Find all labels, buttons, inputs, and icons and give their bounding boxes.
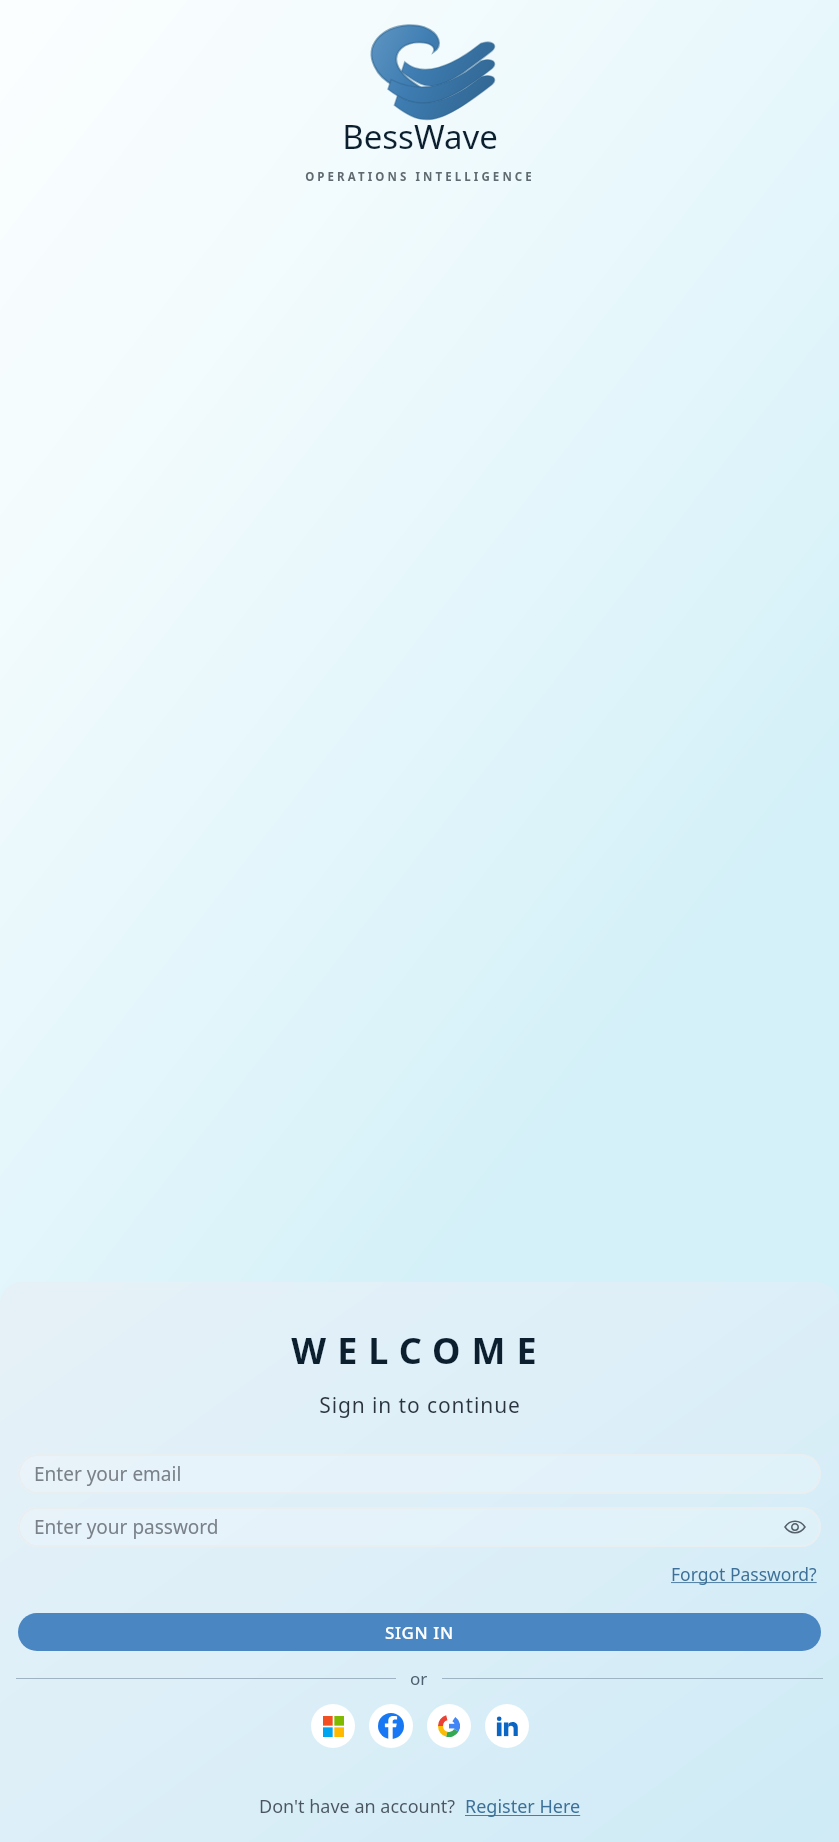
staticText: Enter your password xyxy=(34,1514,219,1540)
button[interactable]: Enter your email xyxy=(18,1454,821,1494)
staticText: or xyxy=(410,1667,428,1690)
staticText: OPERATIONS INTELLIGENCE xyxy=(305,169,535,185)
staticText: WELCOME xyxy=(291,1326,548,1375)
staticText: Sign in to continue xyxy=(319,1391,521,1420)
staticText: SIGN IN xyxy=(385,1621,454,1644)
button[interactable]: Sign in with Facebook xyxy=(369,1704,413,1748)
staticText: Register Here xyxy=(465,1794,581,1819)
button[interactable]: Sign in with Microsoft xyxy=(311,1704,355,1748)
staticText: Forgot Password? xyxy=(671,1562,817,1586)
staticText: Enter your email xyxy=(34,1461,182,1487)
button[interactable]: Register Here xyxy=(465,1790,581,1823)
button[interactable]: Enter your password xyxy=(18,1507,821,1547)
button[interactable]: Forgot Password? xyxy=(667,1557,821,1591)
staticText: BessWave xyxy=(342,114,498,159)
button[interactable]: Sign in with LinkedIn xyxy=(485,1704,529,1748)
other: Show password xyxy=(785,1517,805,1537)
staticText: Don't have an account? xyxy=(259,1794,465,1819)
button[interactable]: SIGN IN xyxy=(18,1613,821,1651)
button[interactable]: Sign in with Google xyxy=(427,1704,471,1748)
